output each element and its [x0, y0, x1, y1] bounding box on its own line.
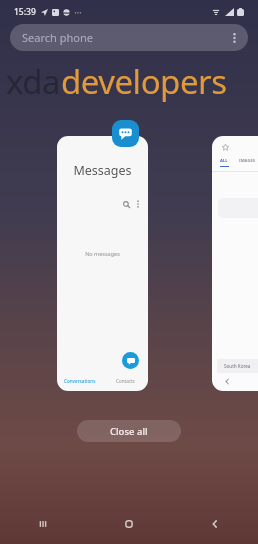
button[interactable]: Contacts: [102, 378, 148, 384]
staticText: No messages: [57, 250, 148, 257]
button[interactable]: Close all: [77, 420, 181, 442]
staticText: developers: [61, 59, 227, 104]
staticText: Conversations: [64, 378, 96, 384]
staticText: Close all: [110, 425, 148, 438]
staticText: Search phone: [22, 30, 93, 45]
button[interactable]: Home: [86, 504, 172, 544]
staticText: ALL: [220, 158, 228, 164]
staticText: 15:39: [14, 6, 36, 18]
staticText: Contacts: [116, 378, 135, 384]
button[interactable]: Back: [172, 504, 258, 544]
other: Messages app: [112, 120, 139, 147]
staticText: South Korea: [224, 363, 251, 369]
button[interactable]: Messages: [57, 136, 148, 391]
button[interactable]: ALL: [212, 136, 258, 391]
button[interactable]: Recent apps: [0, 504, 86, 544]
button[interactable]: Conversations: [57, 378, 102, 384]
staticText: Messages: [57, 162, 148, 179]
staticText: IMAGES: [239, 158, 256, 164]
button[interactable]: Search phone: [10, 24, 248, 51]
button[interactable]: New conversation: [122, 352, 139, 369]
staticText: xda: [6, 59, 61, 104]
